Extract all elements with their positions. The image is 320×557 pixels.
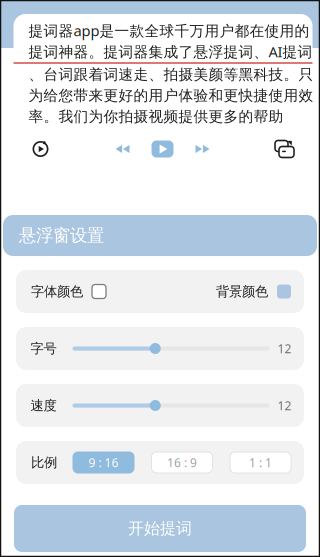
staticText: 12 [277,340,291,356]
button[interactable]: 1 : 1 [230,452,291,473]
staticText: 16 : 9 [167,454,197,470]
staticText: 、台词跟着词速走、拍摄美颜等黑科技。只 [28,65,313,83]
button[interactable]: 16 : 9 [151,452,212,473]
button[interactable]: Font colour [92,284,106,298]
button[interactable]: 开始提词 [14,505,306,552]
staticText: 9 : 16 [88,454,118,470]
staticText: 为给您带来更好的用户体验和更快捷使用效 [28,86,313,104]
staticText: 悬浮窗设置 [19,225,104,246]
staticText: 提词器app是一款全球千万用户都在使用的 [28,21,309,40]
button[interactable]: Background colour [277,284,291,298]
staticText: 开始提词 [128,519,192,538]
button[interactable]: Play [149,136,175,162]
staticText: 背景颜色 [216,283,268,300]
button[interactable]: Restart [25,136,55,162]
button[interactable]: Float window [269,136,299,162]
staticText: 字体颜色 [31,283,83,300]
staticText: 提词神器。提词器集成了悬浮提词、AI提词 [28,42,312,61]
staticText: 率。我们为你拍摄视频提供更多的帮助 [28,107,283,125]
staticText: 1 : 1 [249,454,272,470]
button[interactable]: 9 : 16 [73,452,134,473]
button[interactable]: Rewind [109,136,135,162]
staticText: 字号 [30,340,56,357]
staticText: 速度 [30,397,56,414]
button[interactable]: Fast forward [189,136,215,162]
staticText: 比例 [31,454,57,471]
staticText: 12 [277,397,291,413]
